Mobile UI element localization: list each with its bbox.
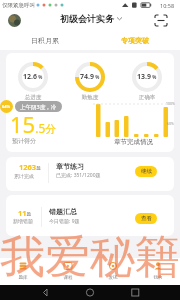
- staticText: 发现: [99, 275, 127, 281]
- staticText: 64%: [2, 104, 11, 109]
- button[interactable]: 日积月累: [0, 30, 90, 50]
- button[interactable]: [6, 195, 174, 236]
- staticText: 1263题: [19, 162, 41, 172]
- button[interactable]: 课程: [54, 258, 82, 285]
- button[interactable]: [8, 14, 21, 27]
- staticText: 错题汇总: [49, 207, 77, 216]
- staticText: 继续: [141, 168, 152, 175]
- staticText: 章节练习: [56, 162, 84, 171]
- staticText: 15.5分: [10, 109, 57, 139]
- button[interactable]: 专项突破: [90, 30, 180, 50]
- staticText: 60%: [167, 121, 174, 126]
- button[interactable]: 查看: [135, 213, 157, 224]
- staticText: 我爱秘籍: [0, 229, 180, 286]
- button[interactable]: 初级会计实务: [60, 13, 122, 24]
- staticText: 正确率: [122, 94, 172, 101]
- staticText: 累计完成: [14, 173, 34, 179]
- staticText: 已完成: 351/1200题: [56, 172, 101, 179]
- staticText: 章节完成情况: [114, 138, 153, 146]
- staticText: 10:58: [160, 2, 175, 9]
- staticText: 13.9 %: [137, 72, 157, 82]
- staticText: 100%: [166, 101, 175, 106]
- staticText: 上午阴3度，冷: [20, 103, 57, 111]
- staticText: 勤勉度: [65, 94, 115, 101]
- staticText: 11题: [18, 208, 32, 218]
- button[interactable]: 题库: [9, 258, 37, 285]
- staticText: 题库: [9, 275, 37, 281]
- staticText: 专项突破: [121, 36, 149, 45]
- staticText: 我的: [144, 275, 172, 281]
- staticText: 仅限紧急呼叫: [2, 2, 35, 9]
- button[interactable]: [6, 157, 174, 191]
- button[interactable]: [154, 14, 168, 28]
- staticText: 12.6 %: [23, 72, 43, 82]
- staticText: 课程: [54, 275, 82, 281]
- staticText: 新增错题: [13, 218, 33, 224]
- button[interactable]: 继续: [135, 166, 157, 177]
- staticText: 预计得分: [12, 137, 36, 145]
- staticText: 74.9 %: [80, 72, 100, 82]
- staticText: 日积月累: [31, 36, 59, 45]
- staticText: 总进度: [8, 94, 58, 101]
- staticText: 查看: [141, 215, 152, 222]
- staticText: 今日错题: 9题: [49, 218, 80, 225]
- button[interactable]: 我的: [144, 258, 172, 285]
- button[interactable]: 发现: [99, 258, 127, 285]
- staticText: 初级会计实务: [60, 13, 114, 24]
